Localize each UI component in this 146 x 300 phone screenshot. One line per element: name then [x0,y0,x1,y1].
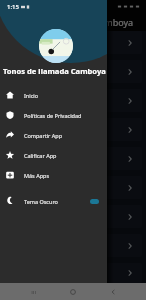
button[interactable] [4,234,142,257]
staticText: Tonos de llamada Camboya [17,16,134,28]
button[interactable]: Políticas de Privacidad [0,105,107,125]
button[interactable] [4,147,142,170]
button[interactable] [4,263,142,283]
button[interactable]: Recents [26,285,40,299]
staticText: Tema Oscuro [24,198,58,205]
button[interactable]: Home [66,285,80,299]
button[interactable]: Tema Oscuro [0,191,107,211]
button[interactable] [4,89,142,112]
staticText: Políticas de Privacidad [24,112,82,119]
staticText: Más Apps [24,172,50,179]
button[interactable] [4,205,142,228]
button[interactable] [4,176,142,199]
button[interactable]: Inicio [0,85,107,105]
staticText: Calificar App [24,152,57,159]
staticText: Tonos de llamada Camboya [3,66,106,76]
button[interactable] [4,31,142,54]
button[interactable] [4,118,142,141]
button[interactable]: Calificar App [0,145,107,165]
staticText: Inicio [24,92,39,99]
button[interactable]: Compartir App [0,125,107,145]
staticText: Compartir App [24,132,63,139]
button[interactable] [4,60,142,83]
button[interactable]: Back [106,285,120,299]
staticText: 1:15 [7,3,19,11]
button[interactable]: Más Apps [0,165,107,185]
